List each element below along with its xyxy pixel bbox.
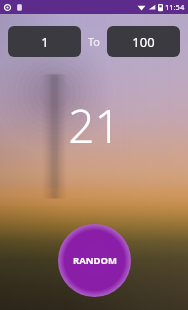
button[interactable]: RANDOM	[58, 224, 131, 297]
staticText: 1	[41, 33, 49, 51]
staticText: RANDOM	[73, 254, 117, 267]
staticText: 21	[68, 94, 121, 157]
staticText: To	[88, 34, 101, 49]
staticText: 11:54	[165, 2, 185, 12]
button[interactable]: Range value 1	[8, 26, 81, 57]
button[interactable]: Range value 100	[107, 26, 180, 57]
staticText: 100	[132, 33, 155, 51]
